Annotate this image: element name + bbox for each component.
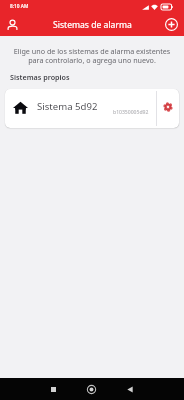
- button[interactable]: Sistema 5d92: [5, 89, 179, 128]
- staticText: 8:10 AM: [10, 3, 29, 10]
- button[interactable]: System settings: [157, 89, 179, 128]
- staticText: Elige uno de los sistemas de alarma exis…: [4, 46, 180, 65]
- button[interactable]: Recents: [44, 380, 63, 399]
- staticText: Sistema 5d92: [37, 100, 98, 113]
- button[interactable]: Add system: [162, 15, 181, 34]
- button[interactable]: Home: [82, 380, 101, 399]
- staticText: Sistemas de alarma: [53, 19, 132, 31]
- button[interactable]: Account: [3, 15, 22, 34]
- button[interactable]: Back: [120, 380, 139, 399]
- staticText: b10350005d92: [113, 109, 149, 116]
- staticText: Sistemas propios: [10, 72, 70, 82]
